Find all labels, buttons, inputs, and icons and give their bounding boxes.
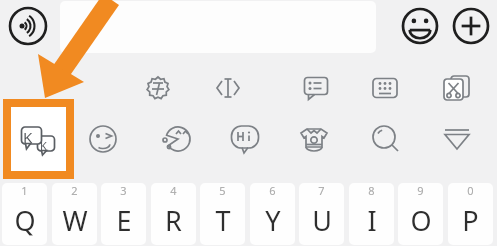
staticText: P <box>462 202 479 239</box>
button[interactable]: 6 <box>250 183 295 245</box>
button[interactable]: Emoji <box>399 5 441 47</box>
staticText: 8 <box>368 183 375 198</box>
staticText: E <box>116 202 132 239</box>
button[interactable]: Stickers <box>294 119 334 159</box>
staticText: R <box>165 202 182 239</box>
button[interactable]: 2 <box>52 183 97 245</box>
staticText: 0 <box>467 183 474 198</box>
staticText: 3 <box>120 183 127 198</box>
button[interactable]: Quick phrases <box>296 68 336 108</box>
button[interactable]: Kaomoji <box>155 119 195 159</box>
staticText: K <box>40 138 47 153</box>
button[interactable]: Keyboard switch <box>3 99 74 179</box>
staticText: Y <box>265 202 281 239</box>
button[interactable]: Text cursor <box>208 68 248 108</box>
button[interactable]: Keypad layout <box>365 68 405 108</box>
staticText: 1 <box>21 183 28 198</box>
button[interactable]: 1 <box>2 183 47 245</box>
button[interactable]: Font style <box>138 68 178 108</box>
staticText: W <box>62 202 88 239</box>
button[interactable]: 4 <box>151 183 196 245</box>
button[interactable]: 5 <box>200 183 245 245</box>
staticText: 7 <box>318 183 325 198</box>
staticText: 5 <box>219 183 226 198</box>
staticText: T <box>215 202 231 239</box>
button[interactable]: Voice input <box>7 5 49 47</box>
button[interactable]: Emoticons <box>83 119 123 159</box>
staticText: 4 <box>170 183 177 198</box>
staticText: O <box>410 202 432 239</box>
staticText: Q <box>14 202 36 239</box>
button[interactable]: Collapse <box>437 119 477 159</box>
staticText: 9 <box>417 183 424 198</box>
staticText: 6 <box>269 183 276 198</box>
button[interactable] <box>60 1 376 53</box>
button[interactable]: Clipboard <box>435 68 475 108</box>
staticText: U <box>312 202 332 239</box>
button[interactable]: 9 <box>398 183 443 245</box>
staticText: I <box>367 202 377 239</box>
button[interactable]: 8 <box>349 183 394 245</box>
button[interactable]: Add <box>450 5 492 47</box>
button[interactable]: 3 <box>101 183 146 245</box>
staticText: K <box>23 127 33 147</box>
staticText: 2 <box>71 183 78 198</box>
button[interactable]: Greetings <box>225 119 265 159</box>
button[interactable]: 7 <box>299 183 344 245</box>
button[interactable]: 0 <box>448 183 493 245</box>
button[interactable]: Search <box>365 119 405 159</box>
